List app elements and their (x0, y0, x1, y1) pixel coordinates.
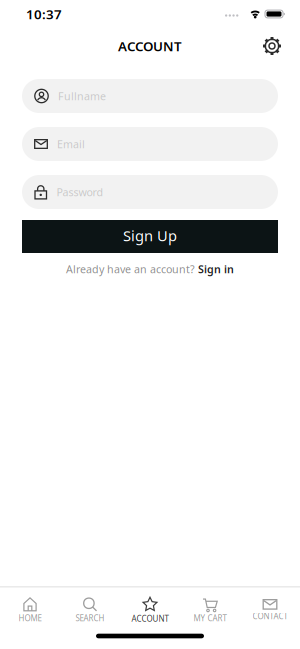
staticText: Password (56, 185, 103, 199)
button[interactable]: ACCOUNT (120, 596, 180, 624)
button[interactable]: Fullname (22, 79, 278, 113)
button[interactable]: MY CART (180, 597, 240, 623)
staticText: MY CART (193, 613, 226, 623)
button[interactable]: SEARCH (60, 597, 120, 623)
button[interactable]: Settings (262, 36, 282, 56)
button[interactable]: Email (22, 127, 278, 161)
staticText: Sign Up (123, 226, 177, 245)
staticText: HOME (18, 613, 41, 623)
staticText: ACCOUNT (118, 37, 182, 55)
staticText: Fullname (58, 89, 106, 103)
button[interactable]: Sign in (198, 262, 234, 276)
staticText: 10:37 (26, 5, 62, 23)
button[interactable]: CONTACT (240, 599, 300, 621)
button[interactable]: Password (22, 175, 278, 209)
staticText: CONTACT (252, 611, 287, 621)
staticText: SEARCH (75, 613, 104, 623)
staticText: Already have an account? (66, 262, 195, 276)
button[interactable]: HOME (0, 597, 60, 623)
staticText: ACCOUNT (131, 613, 168, 624)
button[interactable]: Sign Up (22, 220, 278, 253)
staticText: Sign in (198, 262, 234, 276)
staticText: Email (57, 137, 85, 151)
